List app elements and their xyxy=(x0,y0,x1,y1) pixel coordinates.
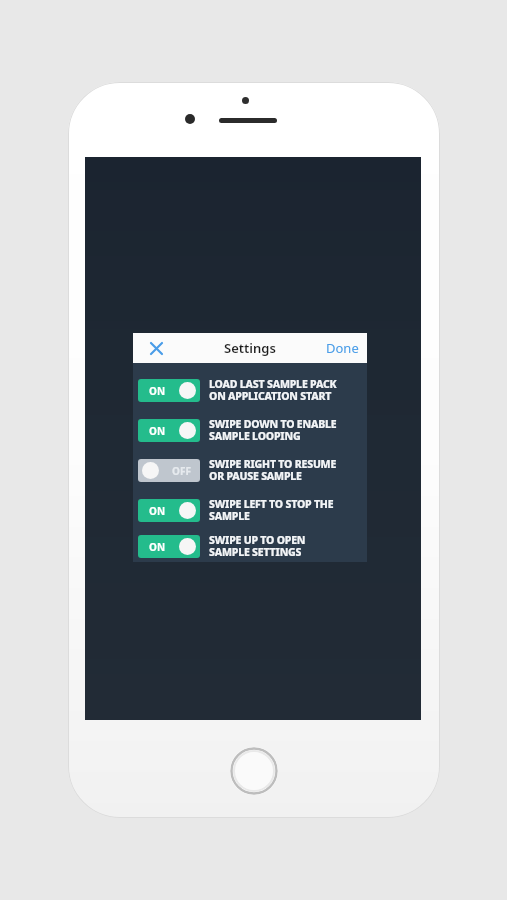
button[interactable]: Toggle on xyxy=(133,410,367,450)
button[interactable]: Done xyxy=(326,339,359,357)
staticText: SWIPE RIGHT TO RESUME OR PAUSE SAMPLE xyxy=(209,457,337,483)
staticText: LOAD LAST SAMPLE PACK ON APPLICATION STA… xyxy=(209,377,337,403)
staticText: ON xyxy=(149,540,166,554)
button[interactable]: Toggle on xyxy=(138,535,200,558)
button[interactable]: Toggle on xyxy=(133,490,367,530)
staticText: Done xyxy=(326,339,359,357)
button[interactable]: Close xyxy=(143,335,169,361)
staticText: SWIPE DOWN TO ENABLE SAMPLE LOOPING xyxy=(209,417,337,443)
button[interactable]: Toggle on xyxy=(133,530,367,562)
staticText: OFF xyxy=(172,464,191,478)
button[interactable]: Toggle on xyxy=(138,419,200,442)
button[interactable]: Toggle off xyxy=(133,450,367,490)
staticText: SWIPE UP TO OPEN SAMPLE SETTINGS xyxy=(209,533,306,559)
staticText: Settings xyxy=(224,339,276,357)
button[interactable]: Home xyxy=(230,747,278,795)
button[interactable]: Toggle off xyxy=(138,459,200,482)
staticText: ON xyxy=(149,504,166,518)
staticText: ON xyxy=(149,384,166,398)
button[interactable]: Toggle on xyxy=(138,499,200,522)
staticText: SWIPE LEFT TO STOP THE SAMPLE xyxy=(209,497,334,523)
staticText: ON xyxy=(149,424,166,438)
button[interactable]: Toggle on xyxy=(138,379,200,402)
button[interactable]: Toggle on xyxy=(133,370,367,410)
